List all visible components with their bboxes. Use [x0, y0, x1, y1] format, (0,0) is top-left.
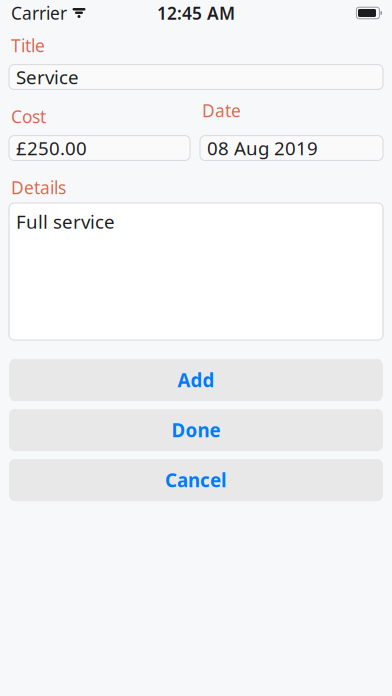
button[interactable]: Add [9, 359, 383, 401]
staticText: Cost [11, 105, 46, 128]
button[interactable]: Cancel [9, 459, 383, 501]
staticText: Done [171, 418, 220, 442]
staticText: Carrier [11, 1, 67, 24]
staticText: Service [16, 65, 79, 89]
button[interactable]: Done [9, 409, 383, 451]
staticText: Add [177, 368, 214, 392]
staticText: 08 Aug 2019 [207, 136, 318, 160]
staticText: Title [11, 34, 45, 57]
staticText: Full service [16, 209, 115, 234]
staticText: Date [202, 99, 241, 122]
staticText: Cancel [165, 468, 227, 492]
staticText: £250.00 [16, 136, 87, 160]
staticText: 12:45 AM [157, 1, 235, 24]
staticText: Details [11, 176, 66, 199]
